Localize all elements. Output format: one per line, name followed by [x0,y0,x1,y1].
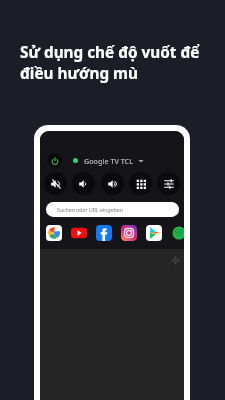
staticText: Suchen oder URL eingeben [57,206,123,213]
button[interactable]: Google Play [146,225,162,241]
button[interactable]: Volume down [72,172,95,195]
button[interactable]: Google [46,225,62,241]
button[interactable]: Mute [44,172,67,195]
button[interactable]: Move [171,256,180,265]
button[interactable]: Suchen oder URL eingeben [46,202,179,217]
button[interactable]: Power [47,153,62,168]
staticText: Sử dụng chế độ vuốt để điều hướng mù [20,42,208,83]
staticText: Google TV TCL [84,156,134,166]
button[interactable]: Settings [157,172,180,195]
button[interactable]: YouTube [71,225,87,241]
button[interactable]: Keypad [129,172,152,195]
button[interactable]: Facebook [96,225,112,241]
button[interactable]: Volume up [101,172,124,195]
button[interactable]: Spotify [171,225,184,241]
button[interactable]: Instagram [121,225,137,241]
